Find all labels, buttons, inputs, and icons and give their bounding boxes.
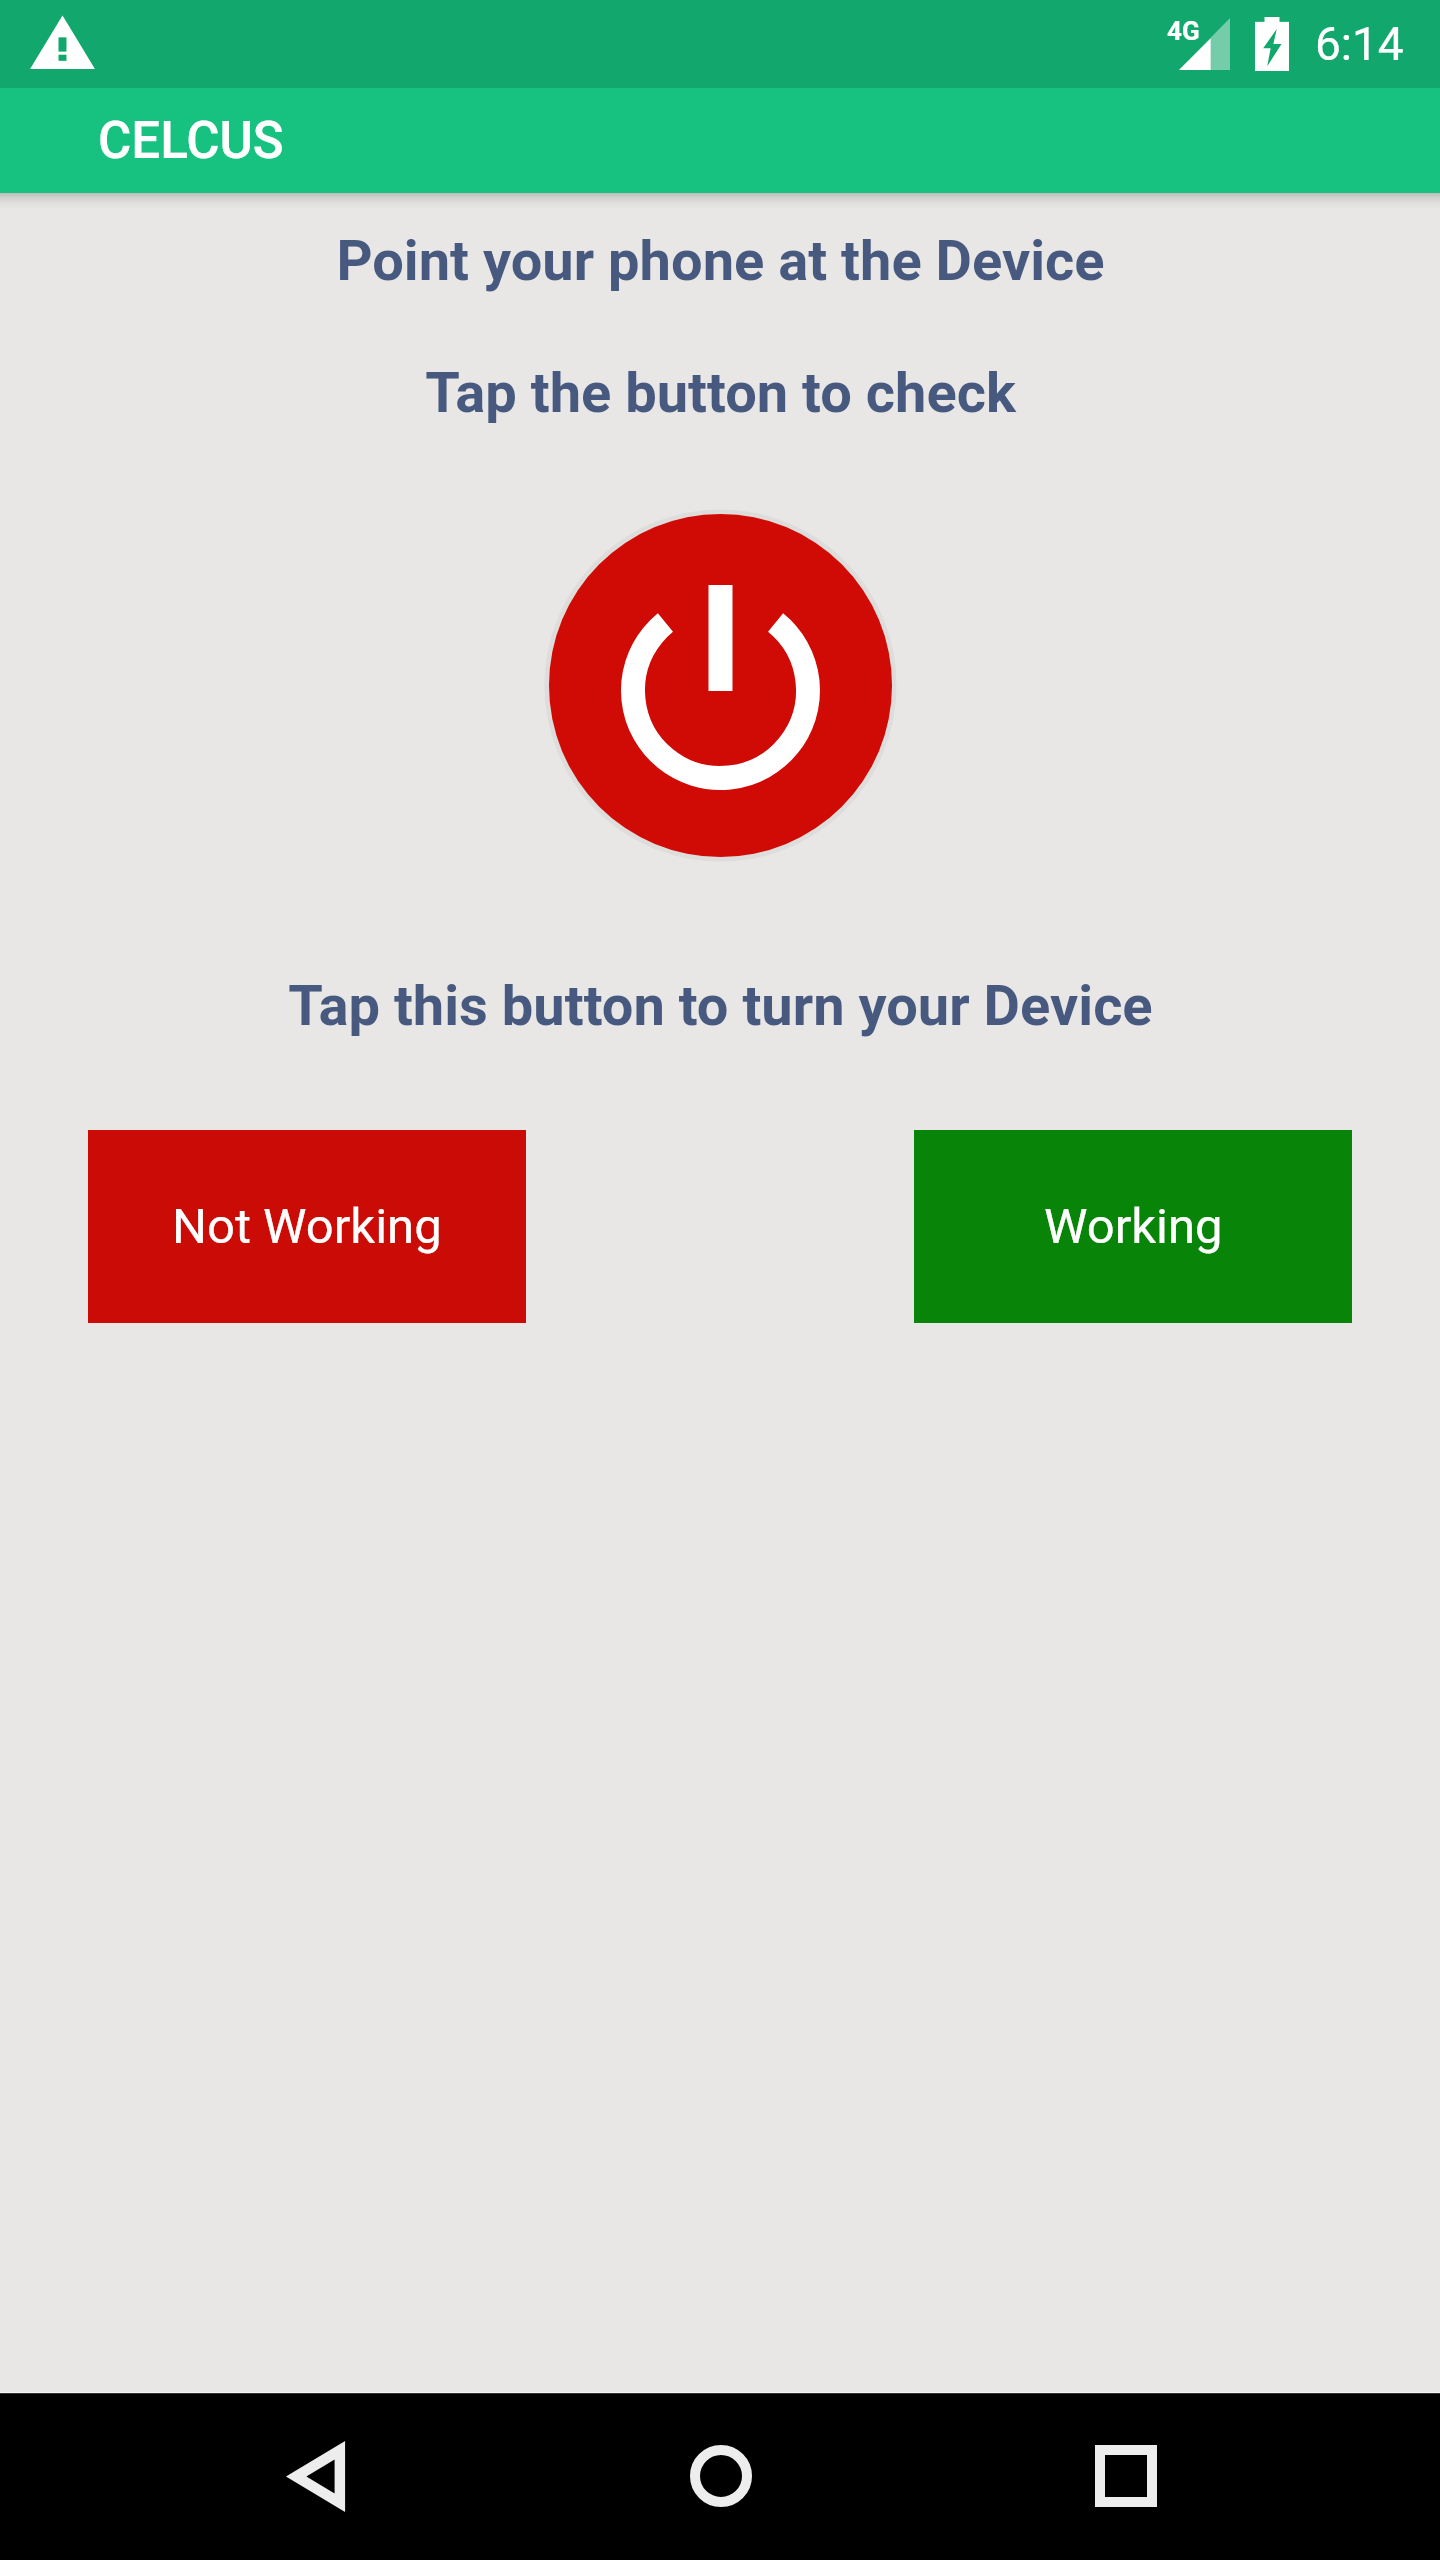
staticText: Tap the button to check xyxy=(425,360,1016,426)
button[interactable]: Home xyxy=(586,2392,856,2560)
button[interactable]: Recent apps xyxy=(991,2392,1261,2560)
staticText: CELCUS xyxy=(98,111,284,171)
staticText: Not Working xyxy=(172,1198,442,1255)
button[interactable]: CELCUS xyxy=(0,88,1440,193)
staticText: Point your phone at the Device xyxy=(336,228,1105,294)
button[interactable]: Power xyxy=(549,514,892,857)
button[interactable]: Not Working xyxy=(88,1130,526,1323)
staticText: Tap this button to turn your Device xyxy=(288,973,1153,1039)
staticText: 6:14 xyxy=(1315,17,1404,71)
button[interactable]: Working xyxy=(914,1130,1352,1323)
staticText: 4G xyxy=(1167,16,1200,46)
button[interactable]: Back xyxy=(183,2392,453,2560)
staticText: Working xyxy=(1044,1198,1223,1255)
